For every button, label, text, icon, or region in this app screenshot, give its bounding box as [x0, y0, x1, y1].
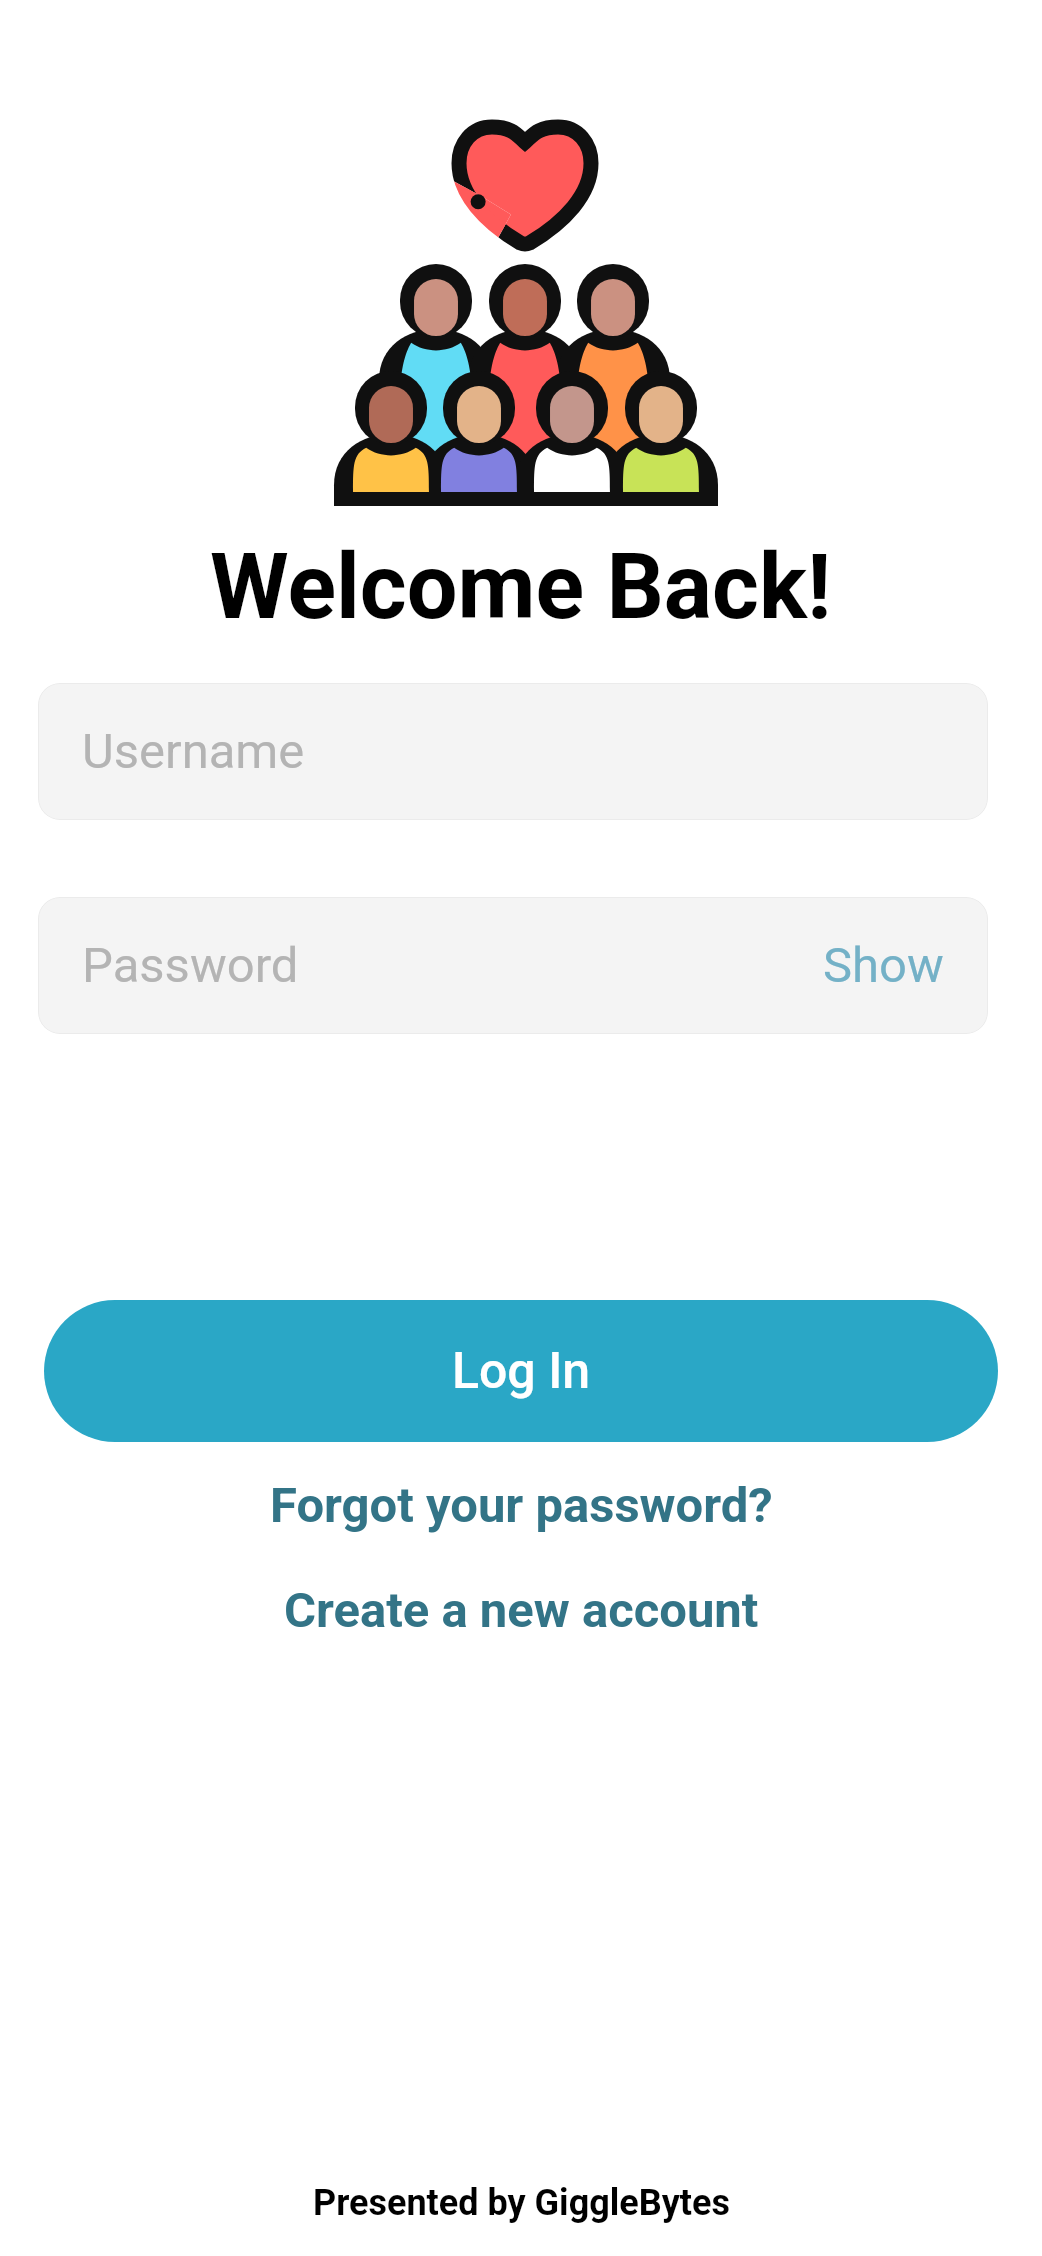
staticText: Username: [82, 723, 305, 780]
staticText: Password: [82, 937, 299, 994]
button[interactable]: Username: [38, 683, 988, 820]
button[interactable]: Forgot your password?: [240, 1463, 803, 1548]
staticText: Show: [823, 937, 944, 994]
staticText: Create a new account: [284, 1582, 759, 1639]
staticText: Forgot your password?: [270, 1477, 773, 1534]
button[interactable]: Create a new account: [254, 1568, 789, 1653]
staticText: Presented by GiggleBytes: [313, 2182, 730, 2224]
button[interactable]: Log In: [44, 1300, 998, 1442]
button[interactable]: Show: [823, 937, 944, 994]
other: Community logo: [321, 112, 721, 512]
staticText: Log In: [452, 1342, 591, 1401]
staticText: Welcome Back!: [210, 535, 832, 640]
button[interactable]: Password: [38, 897, 988, 1034]
